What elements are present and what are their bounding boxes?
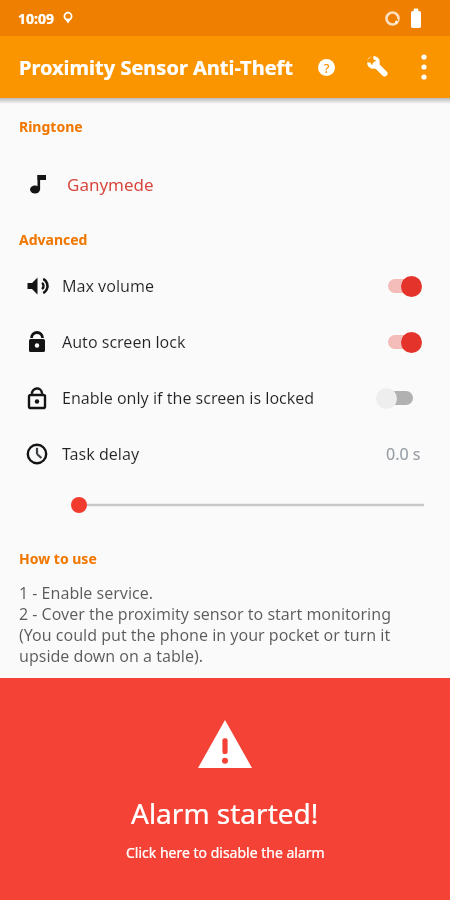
staticText: Max volume: [62, 275, 154, 297]
button[interactable]: [406, 49, 442, 85]
button[interactable]: ?: [306, 47, 346, 87]
button[interactable]: [379, 387, 413, 409]
staticText: Ganymede: [67, 173, 154, 196]
staticText: 0.0 s: [386, 443, 421, 465]
staticText: 1 - Enable service. 2 - Cover the proxim…: [19, 582, 391, 667]
staticText: 10:09: [18, 9, 54, 28]
button[interactable]: Ganymede: [0, 167, 450, 201]
button[interactable]: [387, 275, 421, 297]
staticText: Enable only if the screen is locked: [62, 387, 315, 409]
staticText: Task delay: [62, 443, 140, 465]
button[interactable]: Enable only if the screen is locked: [0, 370, 450, 426]
staticText: Click here to disable the alarm: [126, 843, 325, 862]
button[interactable]: [0, 482, 450, 528]
staticText: Alarm started!: [131, 794, 319, 832]
button[interactable]: Auto screen lock: [0, 314, 450, 370]
button[interactable]: [358, 47, 398, 87]
button[interactable]: [387, 331, 421, 353]
button[interactable]: Alarm started!: [0, 678, 450, 900]
staticText: ?: [324, 60, 330, 76]
staticText: Advanced: [19, 230, 88, 249]
staticText: Ringtone: [19, 117, 83, 136]
button[interactable]: Task delay: [0, 426, 450, 482]
button[interactable]: Max volume: [0, 258, 450, 314]
staticText: How to use: [19, 549, 97, 568]
staticText: Auto screen lock: [62, 331, 186, 353]
staticText: Proximity Sensor Anti-Theft: [19, 54, 294, 81]
